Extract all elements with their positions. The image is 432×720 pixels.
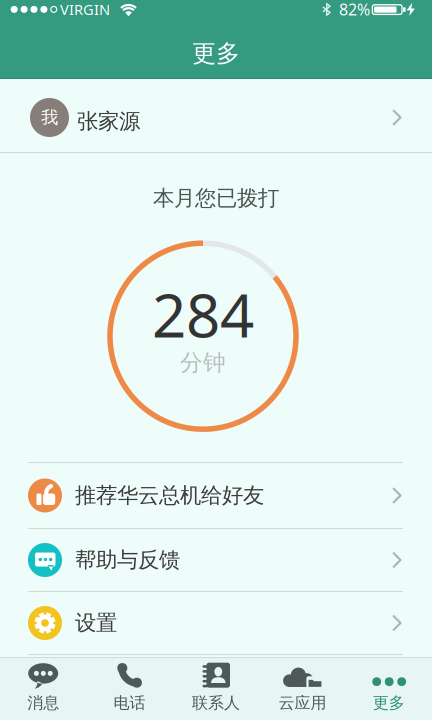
staticText: 云应用 bbox=[278, 693, 326, 713]
staticText: 设置 bbox=[75, 610, 117, 636]
staticText: 更多 bbox=[373, 693, 405, 713]
staticText: 消息 bbox=[27, 693, 59, 713]
staticText: 电话 bbox=[114, 693, 146, 713]
button[interactable]: 更多 bbox=[346, 658, 432, 720]
button[interactable]: 帮助与反馈 bbox=[0, 529, 432, 591]
staticText: 我 bbox=[41, 107, 58, 128]
staticText: 本月您已拨打 bbox=[153, 185, 279, 211]
button[interactable]: 云应用 bbox=[259, 658, 346, 720]
staticText: 更多 bbox=[192, 39, 240, 68]
staticText: 帮助与反馈 bbox=[75, 547, 180, 573]
staticText: 联系人 bbox=[192, 693, 240, 713]
staticText: VIRGIN bbox=[60, 0, 110, 19]
button[interactable]: 电话 bbox=[86, 658, 173, 720]
button[interactable]: 消息 bbox=[0, 658, 86, 720]
staticText: 分钟 bbox=[180, 349, 226, 377]
staticText: 284 bbox=[152, 274, 254, 354]
button[interactable]: 联系人 bbox=[173, 658, 259, 720]
staticText: 张家源 bbox=[77, 108, 140, 135]
button[interactable]: 我 bbox=[0, 79, 432, 152]
staticText: 推荐华云总机给好友 bbox=[75, 482, 264, 509]
button[interactable]: 设置 bbox=[0, 592, 432, 654]
staticText: 82% bbox=[339, 0, 370, 20]
button[interactable]: 推荐华云总机给好友 bbox=[0, 463, 432, 528]
